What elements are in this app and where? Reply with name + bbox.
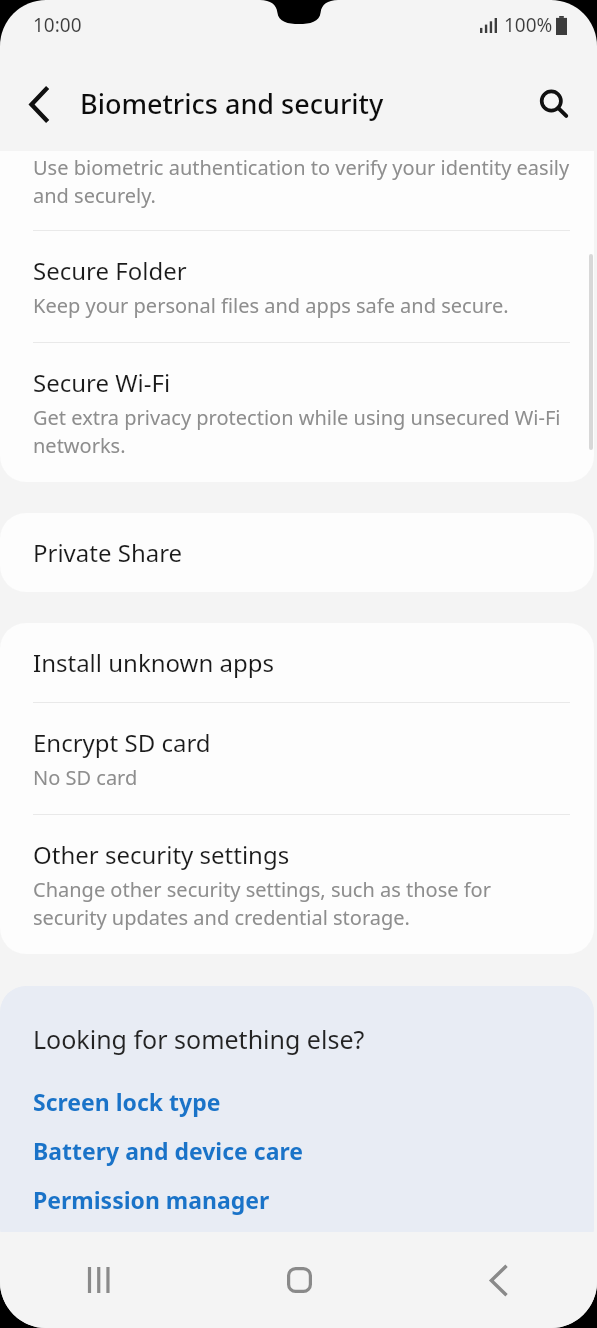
staticText: Install unknown apps: [33, 646, 274, 679]
staticText: Encrypt SD card: [33, 726, 211, 759]
staticText: 10:00: [33, 12, 82, 38]
button[interactable]: Screen lock type: [0, 1077, 594, 1126]
staticText: Looking for something else?: [33, 1022, 365, 1056]
staticText: No SD card: [33, 764, 138, 791]
staticText: 100%: [504, 12, 553, 38]
button[interactable]: Battery and device care: [0, 1126, 594, 1175]
staticText: Other security settings: [33, 838, 290, 871]
button[interactable]: Permission manager: [0, 1175, 594, 1224]
button[interactable]: Search: [528, 78, 580, 130]
staticText: Change other security settings, such as …: [33, 876, 491, 931]
staticText: Permission manager: [33, 1184, 270, 1215]
staticText: Secure Wi-Fi: [33, 366, 171, 399]
staticText: Battery and device care: [33, 1135, 303, 1166]
button[interactable]: Install unknown apps: [0, 623, 594, 702]
button[interactable]: Recent apps: [60, 1240, 140, 1320]
staticText: Use biometric authentication to verify y…: [33, 154, 570, 209]
button[interactable]: Secure Folder: [0, 231, 594, 342]
button[interactable]: Use biometric authentication to verify y…: [0, 151, 594, 230]
staticText: Private Share: [33, 536, 183, 569]
button[interactable]: Encrypt SD card: [0, 703, 594, 814]
staticText: Keep your personal files and apps safe a…: [33, 292, 509, 319]
button[interactable]: Back: [458, 1240, 538, 1320]
staticText: Secure Folder: [33, 254, 187, 287]
staticText: Get extra privacy protection while using…: [33, 404, 561, 459]
button[interactable]: Back: [13, 78, 65, 130]
button[interactable]: Home: [259, 1240, 339, 1320]
staticText: Biometrics and security: [80, 85, 384, 122]
button[interactable]: Other security settings: [0, 815, 594, 954]
button[interactable]: Private Share: [0, 513, 594, 592]
button[interactable]: Secure Wi-Fi: [0, 343, 594, 482]
staticText: Screen lock type: [33, 1086, 221, 1117]
